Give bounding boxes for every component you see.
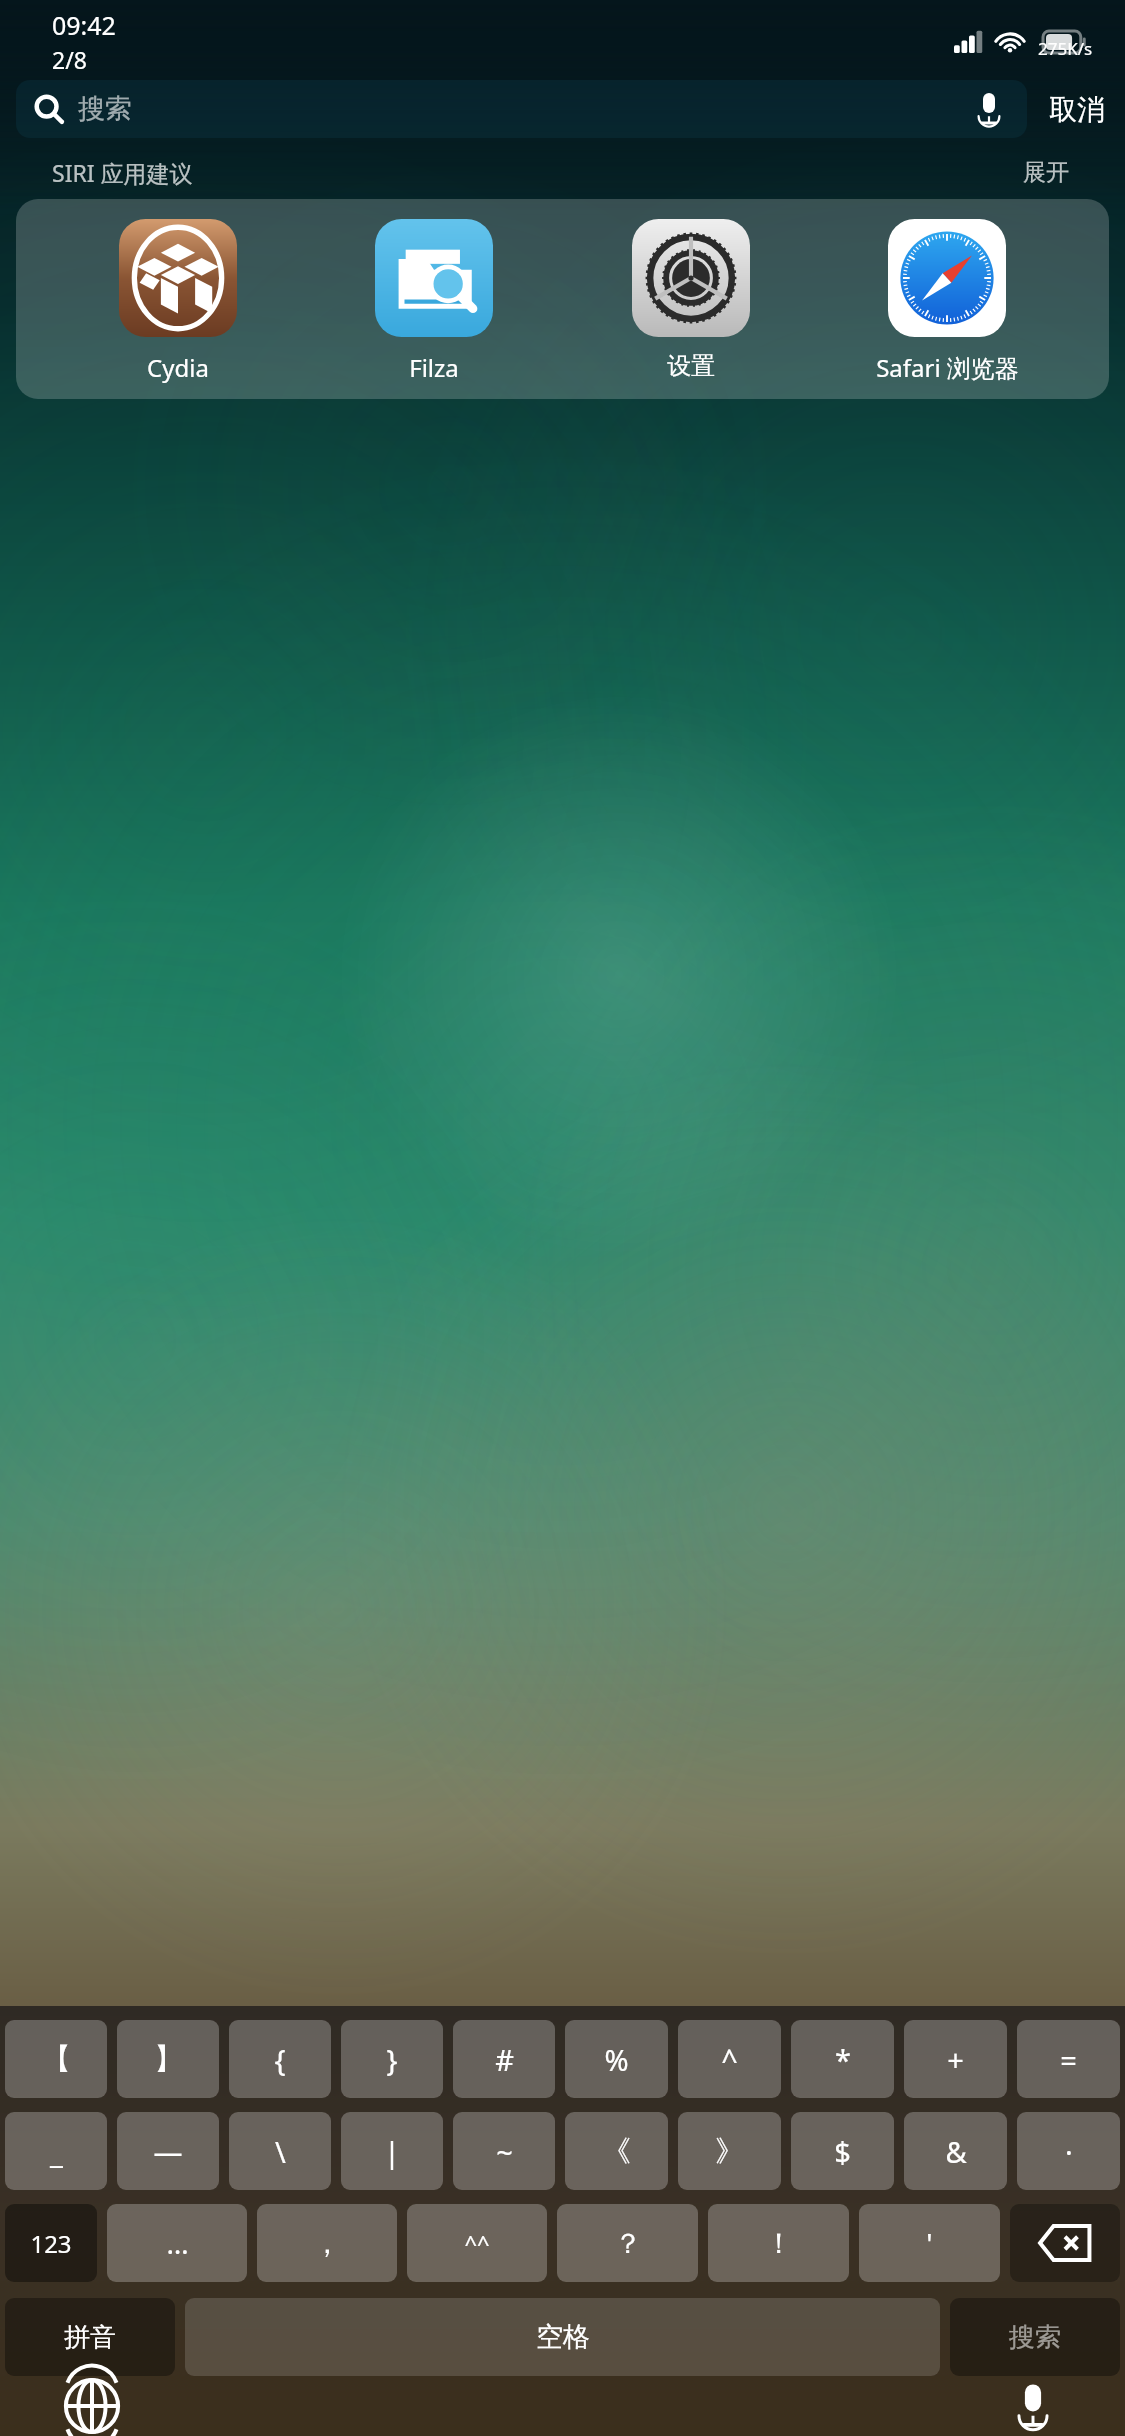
- button[interactable]: 123: [5, 2204, 97, 2282]
- staticText: ^: [721, 2040, 738, 2079]
- button[interactable]: ？: [557, 2204, 698, 2282]
- staticText: 》: [715, 2133, 744, 2170]
- staticText: %: [604, 2040, 629, 2079]
- button[interactable]: 》: [678, 2112, 781, 2190]
- button[interactable]: *: [791, 2020, 894, 2098]
- staticText: 2/8: [52, 44, 87, 75]
- button[interactable]: #: [453, 2020, 555, 2098]
- button[interactable]: —: [117, 2112, 219, 2190]
- staticText: 设置: [667, 351, 715, 381]
- button[interactable]: Safari 浏览器: [852, 217, 1042, 386]
- staticText: *: [835, 2040, 851, 2079]
- button[interactable]: ~: [453, 2112, 555, 2190]
- staticText: SIRI 应用建议: [52, 157, 193, 188]
- staticText: 拼音: [64, 2321, 116, 2354]
- staticText: 搜索: [1009, 2321, 1061, 2354]
- staticText: $: [834, 2132, 851, 2171]
- button[interactable]: Filza: [339, 217, 529, 386]
- staticText: 空格: [536, 2320, 590, 2354]
- staticText: 09:42: [52, 8, 116, 42]
- button[interactable]: 【: [5, 2020, 107, 2098]
- button[interactable]: Dictate: [1001, 2376, 1065, 2436]
- button[interactable]: ^: [678, 2020, 781, 2098]
- staticText: ·: [1065, 2132, 1073, 2171]
- staticText: 123: [30, 2227, 72, 2260]
- staticText: …: [166, 2224, 189, 2262]
- button[interactable]: $: [791, 2112, 894, 2190]
- button[interactable]: }: [341, 2020, 443, 2098]
- staticText: _: [50, 2132, 63, 2171]
- staticText: 《: [602, 2133, 631, 2170]
- staticText: 【: [42, 2041, 71, 2078]
- staticText: 搜索: [78, 92, 132, 126]
- staticText: ^^: [464, 2228, 490, 2258]
- button[interactable]: _: [5, 2112, 107, 2190]
- staticText: ~: [496, 2132, 513, 2171]
- button[interactable]: 设置: [596, 217, 786, 383]
- button[interactable]: Cydia: [83, 217, 273, 386]
- staticText: {: [274, 2040, 286, 2079]
- button[interactable]: Backspace: [1010, 2204, 1120, 2282]
- button[interactable]: 取消: [1045, 84, 1109, 135]
- staticText: Safari 浏览器: [876, 351, 1019, 384]
- staticText: ': [926, 2224, 933, 2262]
- button[interactable]: 拼音: [5, 2298, 175, 2376]
- button[interactable]: \: [229, 2112, 331, 2190]
- staticText: }: [386, 2040, 398, 2079]
- button[interactable]: 】: [117, 2020, 219, 2098]
- button[interactable]: +: [904, 2020, 1007, 2098]
- staticText: 展开: [1023, 158, 1069, 187]
- staticText: \: [275, 2132, 286, 2171]
- staticText: —: [153, 2132, 183, 2171]
- button[interactable]: Change keyboard: [60, 2376, 124, 2436]
- button[interactable]: ': [859, 2204, 1000, 2282]
- button[interactable]: Voice search: [969, 89, 1009, 129]
- staticText: Cydia: [147, 351, 209, 384]
- button[interactable]: &: [904, 2112, 1007, 2190]
- button[interactable]: 展开: [1019, 154, 1073, 191]
- button[interactable]: ·: [1017, 2112, 1120, 2190]
- button[interactable]: ，: [257, 2204, 397, 2282]
- button[interactable]: 搜索: [16, 80, 1027, 138]
- staticText: ！: [765, 2226, 793, 2261]
- staticText: |: [384, 2132, 400, 2171]
- button[interactable]: =: [1017, 2020, 1120, 2098]
- button[interactable]: ！: [708, 2204, 849, 2282]
- staticText: 275K/s: [1038, 37, 1093, 60]
- staticText: ？: [614, 2226, 642, 2261]
- staticText: 取消: [1049, 92, 1105, 127]
- button[interactable]: 空格: [185, 2298, 940, 2376]
- button[interactable]: %: [565, 2020, 668, 2098]
- button[interactable]: 《: [565, 2112, 668, 2190]
- button[interactable]: …: [107, 2204, 247, 2282]
- button[interactable]: {: [229, 2020, 331, 2098]
- button[interactable]: |: [341, 2112, 443, 2190]
- staticText: +: [947, 2040, 964, 2079]
- staticText: =: [1060, 2040, 1077, 2079]
- button[interactable]: ^^: [407, 2204, 547, 2282]
- staticText: #: [495, 2040, 514, 2079]
- staticText: ，: [313, 2226, 341, 2261]
- staticText: 】: [154, 2041, 183, 2078]
- staticText: &: [945, 2132, 967, 2171]
- button[interactable]: 搜索: [950, 2298, 1120, 2376]
- staticText: Filza: [409, 351, 459, 384]
